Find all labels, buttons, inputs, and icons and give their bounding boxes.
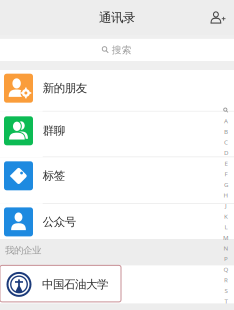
staticText: M — [223, 233, 229, 242]
staticText: F — [224, 170, 227, 178]
staticText: H — [223, 191, 228, 199]
staticText: J — [225, 201, 227, 210]
button[interactable]: 群聊 — [0, 112, 234, 157]
button[interactable]: 新的朋友 — [0, 70, 234, 112]
button[interactable]: 搜索 — [0, 39, 234, 61]
staticText: C — [224, 138, 228, 146]
staticText: B — [224, 127, 228, 136]
button[interactable]: Add contact — [202, 0, 234, 35]
staticText: P — [224, 254, 228, 263]
staticText: A — [224, 117, 228, 125]
staticText: R — [224, 276, 228, 284]
staticText: S — [224, 286, 227, 295]
staticText: 群聊 — [43, 124, 65, 138]
staticText: N — [223, 244, 228, 252]
staticText: K — [224, 212, 228, 220]
button[interactable]: 标签 — [0, 157, 234, 204]
staticText: E — [224, 159, 227, 167]
staticText: Q — [223, 265, 228, 273]
staticText: D — [224, 148, 228, 157]
button[interactable]: 公众号 — [0, 204, 234, 239]
staticText: L — [224, 223, 227, 231]
staticText: 中国石油大学 — [42, 277, 108, 292]
staticText: 我的企业 — [5, 244, 41, 256]
staticText: G — [224, 180, 228, 189]
staticText: 通讯录 — [99, 10, 135, 25]
button[interactable]: 中国石油大学 — [0, 265, 234, 303]
staticText: 标签 — [43, 169, 65, 183]
staticText: 搜索 — [112, 44, 132, 56]
staticText: 新的朋友 — [43, 81, 87, 95]
staticText: T — [224, 297, 227, 305]
staticText: 公众号 — [43, 215, 76, 229]
